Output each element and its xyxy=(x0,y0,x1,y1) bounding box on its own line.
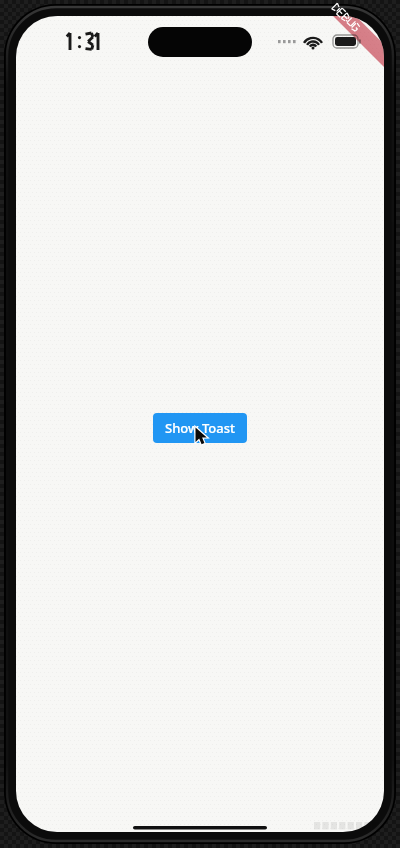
staticText: Show Toast xyxy=(165,419,235,437)
button[interactable]: Show Toast xyxy=(153,413,247,443)
